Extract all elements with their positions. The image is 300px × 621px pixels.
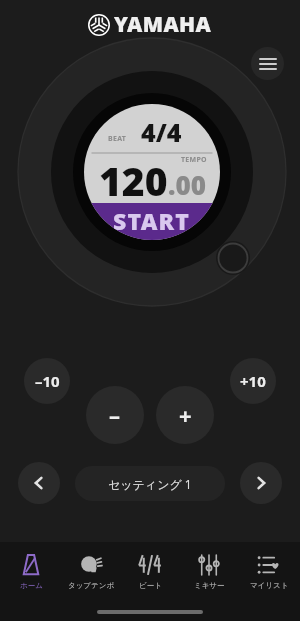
button[interactable]: ホーム [3,550,59,592]
staticText: ホーム [20,581,43,590]
staticText: + [179,400,192,430]
staticText: – [109,400,121,430]
button[interactable]: BEAT [84,104,220,152]
staticText: .00 [168,167,206,202]
button[interactable]: ビート [122,550,178,592]
staticText: マイリスト [250,581,289,590]
staticText: BEAT [108,134,127,144]
staticText: TEMPO [181,155,207,165]
staticText: 120 [99,154,168,202]
staticText: +10 [240,371,266,391]
staticText: ミキサー [194,581,225,590]
staticText: 4/4 [141,115,182,149]
staticText: YAMAHA [114,10,212,39]
button[interactable]: 120 [84,154,220,203]
button[interactable]: Increase tempo by 10 [230,358,276,404]
staticText: セッティング 1 [108,476,192,492]
staticText: START [113,205,191,236]
staticText: タップテンポ [68,581,115,590]
button[interactable]: マイリスト [241,550,297,592]
button[interactable]: Increase tempo [156,386,214,444]
button[interactable]: ミキサー [181,550,237,592]
button[interactable]: START [84,203,220,240]
button[interactable]: セッティング 1 [75,466,225,501]
button[interactable]: Decrease tempo [86,386,144,444]
button[interactable]: Menu [251,47,284,80]
button[interactable]: Decrease tempo by 10 [24,358,70,404]
staticText: ビート [139,581,162,590]
button[interactable]: Next setting [240,462,282,504]
staticText: –10 [35,371,60,391]
button[interactable]: タップテンポ [63,550,119,592]
button[interactable]: Tempo knob [216,241,250,275]
button[interactable]: Previous setting [18,462,60,504]
